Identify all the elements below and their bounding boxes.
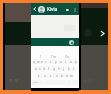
button[interactable]: m: [69, 73, 74, 78]
button[interactable]: k: [66, 66, 71, 71]
staticText: t: [50, 60, 52, 64]
button[interactable]: f: [46, 66, 51, 71]
staticText: W M: [9, 78, 19, 83]
button[interactable]: y: [53, 59, 58, 64]
staticText: The: [51, 55, 57, 59]
button[interactable]: z: [36, 73, 42, 78]
button[interactable]: Kivia: [47, 6, 58, 12]
button[interactable]: v: [54, 73, 59, 78]
button[interactable]: q: [32, 59, 36, 64]
staticText: w: [37, 60, 40, 64]
button[interactable]: j: [61, 66, 66, 71]
button[interactable]: [31, 38, 79, 46]
staticText: It D: [84, 78, 92, 83]
button[interactable]: l: [71, 66, 76, 71]
staticText: z: [38, 74, 40, 78]
button[interactable]: d: [42, 66, 46, 71]
staticText: d: [43, 67, 45, 71]
button[interactable]: The: [51, 55, 57, 59]
staticText: y: [55, 60, 57, 64]
staticText: c: [50, 74, 52, 78]
button[interactable]: w: [36, 59, 40, 64]
button[interactable]: Video call: [64, 6, 71, 13]
button[interactable]: u: [58, 59, 63, 64]
button[interactable]: Profile photo: [38, 6, 45, 13]
staticText: q: [33, 60, 35, 64]
staticText: h: [58, 67, 60, 71]
button[interactable]: n: [64, 73, 69, 78]
button[interactable]: Symbols: [32, 80, 38, 85]
button[interactable]: b: [59, 73, 64, 78]
button[interactable]: I'm: [65, 55, 70, 59]
button[interactable]: x: [42, 73, 48, 78]
staticText: n: [66, 74, 68, 78]
staticText: g: [53, 67, 55, 71]
staticText: p: [75, 60, 77, 64]
button[interactable]: c: [48, 73, 54, 78]
button[interactable]: i: [63, 59, 68, 64]
staticText: i: [65, 60, 66, 64]
staticText: r: [45, 60, 47, 64]
button[interactable]: Back: [32, 6, 38, 12]
staticText: b: [61, 74, 63, 78]
button[interactable]: g: [51, 66, 56, 71]
staticText: x: [44, 74, 46, 78]
button[interactable]: More options: [71, 6, 78, 13]
button[interactable]: r: [44, 59, 48, 64]
staticText: v: [56, 74, 58, 78]
staticText: j: [63, 67, 64, 71]
staticText: f: [48, 67, 50, 71]
staticText: I: [40, 55, 42, 59]
button[interactable]: e: [40, 59, 44, 64]
staticText: s: [39, 67, 41, 71]
staticText: u: [60, 60, 62, 64]
button[interactable]: I: [40, 55, 42, 59]
button[interactable]: o: [68, 59, 73, 64]
button[interactable]: a: [34, 66, 38, 71]
staticText: k: [68, 67, 70, 71]
button[interactable]: h: [56, 66, 61, 71]
staticText: o: [70, 60, 72, 64]
staticText: I'm: [65, 55, 70, 59]
button[interactable]: p: [73, 59, 78, 64]
button[interactable]: t: [48, 59, 53, 64]
button[interactable]: s: [38, 66, 42, 71]
staticText: m: [70, 74, 73, 78]
staticText: e: [41, 60, 43, 64]
staticText: ?123: [33, 81, 38, 84]
staticText: a: [35, 67, 37, 71]
staticText: l: [73, 67, 74, 71]
